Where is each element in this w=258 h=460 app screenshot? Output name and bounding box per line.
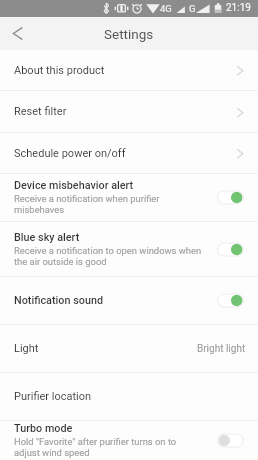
staticText: Bright light	[197, 343, 246, 355]
button[interactable]: Purifier location	[0, 373, 258, 420]
staticText: Blue sky alert	[14, 231, 80, 244]
staticText: G	[189, 3, 196, 14]
button[interactable]: Blue sky alert	[0, 222, 258, 276]
staticText: Turbo mode	[14, 422, 73, 435]
staticText: Receive a notification to open windows w…	[14, 245, 202, 268]
button[interactable]: Switch on	[217, 190, 244, 205]
button[interactable]: Turbo mode	[0, 421, 258, 460]
button[interactable]: Back	[0, 17, 40, 50]
staticText: 21:19	[226, 2, 251, 14]
staticText: Notification sound	[14, 294, 103, 307]
staticText: Reset filter	[14, 105, 67, 118]
staticText: Light	[14, 342, 39, 355]
staticText: Hold "Favorite" after purifier turns on …	[14, 436, 202, 459]
staticText: Schedule power on/off	[14, 147, 126, 160]
button[interactable]: About this product	[0, 50, 258, 90]
button[interactable]: Reset filter	[0, 91, 258, 132]
staticText: Device misbehavior alert	[14, 179, 134, 192]
button[interactable]: Notification sound	[0, 277, 258, 324]
button[interactable]: Schedule power on/off	[0, 133, 258, 173]
staticText: Purifier location	[14, 390, 92, 403]
button[interactable]: Switch on	[217, 242, 244, 257]
button[interactable]: Light	[0, 325, 258, 372]
staticText: 4G	[160, 3, 172, 14]
button[interactable]: Device misbehavior alert	[0, 174, 258, 221]
staticText: About this product	[14, 64, 105, 77]
staticText: Receive a notification when purifier mis…	[14, 193, 202, 216]
staticText: Settings	[104, 26, 154, 42]
button[interactable]: Switch on	[217, 293, 244, 308]
button[interactable]: Switch off	[217, 433, 244, 448]
